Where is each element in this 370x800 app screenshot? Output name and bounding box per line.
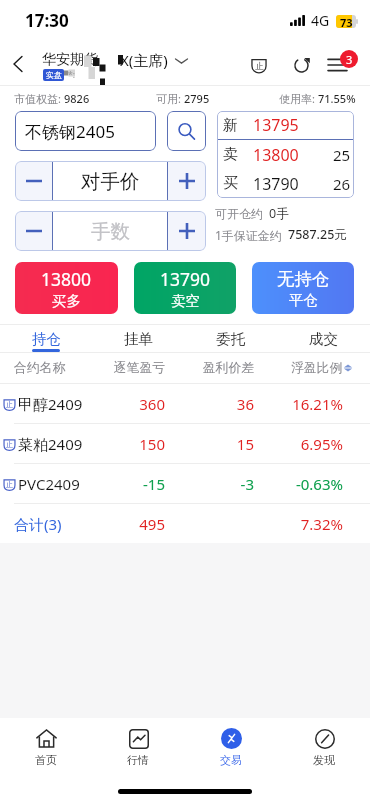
button[interactable]: Increase: [168, 161, 206, 201]
staticText: 行情: [127, 753, 149, 767]
staticText: 73: [340, 15, 353, 28]
staticText: 1手保证金约: [215, 227, 282, 243]
staticText: 不锈钢2405: [25, 120, 115, 143]
staticText: 13790: [253, 173, 299, 195]
staticText: 2795: [184, 91, 210, 106]
staticText: 无持仓: [277, 268, 330, 290]
staticText: 3: [346, 52, 353, 67]
staticText: -3: [165, 474, 254, 494]
staticText: 17:30: [25, 9, 69, 32]
staticText: 发现: [313, 753, 335, 767]
staticText: 150: [76, 434, 165, 454]
staticText: 止: [6, 440, 14, 449]
button[interactable]: 13800: [15, 262, 118, 314]
staticText: 华安期货: [42, 51, 98, 69]
button[interactable]: 发现: [277, 718, 370, 776]
staticText: 止: [6, 400, 14, 409]
staticText: 首页: [35, 753, 57, 767]
staticText: 合约名称: [14, 360, 66, 376]
staticText: 4G: [311, 11, 330, 30]
staticText: 16.21%: [254, 394, 343, 414]
staticText: 止: [255, 60, 264, 71]
staticText: 卖: [223, 145, 238, 164]
staticText: 浮盈比例: [291, 360, 343, 376]
button[interactable]: Menu: [324, 49, 358, 81]
staticText: 使用率:: [279, 91, 318, 106]
staticText: 持仓: [32, 330, 61, 348]
button[interactable]: 行情: [92, 718, 184, 776]
button[interactable]: 首页: [0, 718, 92, 776]
button[interactable]: 成交: [277, 325, 370, 352]
staticText: 26: [333, 174, 351, 194]
button[interactable]: Increase: [168, 211, 206, 251]
staticText: 市值权益:: [14, 91, 64, 106]
staticText: 360: [76, 394, 165, 414]
staticText: 甲醇2409: [18, 394, 83, 414]
staticText: 委托: [216, 330, 245, 348]
button[interactable]: 手数: [53, 211, 167, 251]
button[interactable]: 持仓: [0, 325, 92, 352]
staticText: 13800: [41, 267, 92, 291]
staticText: 逐笔盈亏: [76, 360, 165, 376]
button[interactable]: 13790: [134, 262, 236, 314]
staticText: 手数: [91, 219, 130, 244]
staticText: *:: [68, 69, 75, 81]
staticText: PVC2409: [18, 474, 80, 494]
staticText: 买多: [52, 292, 81, 310]
staticText: 卖空: [171, 292, 200, 310]
staticText: 菜粕2409: [18, 434, 83, 454]
staticText: 0手: [269, 205, 289, 222]
staticText: 9826: [64, 91, 90, 106]
staticText: 13795: [253, 114, 299, 136]
staticText: -0.63%: [254, 474, 343, 494]
button[interactable]: Stop loss settings: [243, 49, 275, 81]
staticText: 13790: [160, 267, 211, 291]
button[interactable]: 对手价: [53, 161, 167, 201]
staticText: 成交: [309, 330, 338, 348]
staticText: 15: [165, 434, 254, 454]
button[interactable]: 委托: [184, 325, 277, 352]
staticText: 新: [223, 116, 238, 135]
staticText: 71.55%: [318, 91, 356, 106]
button[interactable]: 不锈钢2405: [15, 111, 156, 151]
staticText: 7.32%: [254, 514, 343, 534]
staticText: 25: [333, 145, 351, 165]
staticText: 实盘: [46, 70, 62, 80]
staticText: 平仓: [289, 291, 318, 309]
staticText: 合计(3): [14, 514, 62, 534]
staticText: 495: [76, 514, 165, 534]
button[interactable]: 止: [0, 384, 370, 423]
staticText: 交易: [220, 753, 242, 767]
staticText: 6.95%: [254, 434, 343, 454]
staticText: 挂单: [124, 330, 153, 348]
button[interactable]: 止: [0, 464, 370, 503]
button[interactable]: Search: [167, 111, 206, 151]
staticText: 7587.25元: [288, 226, 347, 243]
staticText: 可开仓约: [215, 206, 263, 221]
staticText: 盈利价差: [165, 360, 254, 376]
staticText: 止: [6, 480, 14, 489]
button[interactable]: Decrease: [15, 211, 52, 251]
staticText: -15: [76, 474, 165, 494]
staticText: 可用:: [156, 91, 184, 106]
staticText: X(主席): [120, 50, 168, 70]
staticText: 对手价: [81, 169, 140, 194]
button[interactable]: Back: [0, 42, 36, 86]
button[interactable]: 交易: [184, 718, 277, 776]
button[interactable]: 止: [0, 424, 370, 463]
staticText: 36: [165, 394, 254, 414]
staticText: 13800: [253, 144, 299, 166]
button[interactable]: Decrease: [15, 161, 52, 201]
button[interactable]: 挂单: [92, 325, 184, 352]
button[interactable]: 无持仓: [252, 262, 354, 314]
staticText: 买: [223, 174, 238, 193]
button[interactable]: Refresh: [285, 49, 317, 81]
